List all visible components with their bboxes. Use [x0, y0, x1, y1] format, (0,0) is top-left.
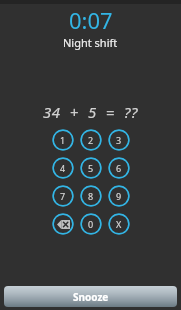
staticText: 8 — [88, 190, 94, 202]
staticText: Night shift — [63, 35, 118, 50]
staticText: X — [116, 218, 122, 230]
button[interactable]: 8 — [80, 185, 102, 207]
staticText: 5 — [88, 162, 94, 174]
button[interactable]: 4 — [52, 157, 74, 179]
staticText: 4 — [60, 162, 66, 174]
staticText: 9 — [116, 190, 122, 202]
staticText: 0:07 — [69, 5, 113, 35]
staticText: 6 — [116, 162, 122, 174]
button[interactable]: 3 — [108, 129, 130, 151]
staticText: Snooze — [73, 290, 109, 304]
button[interactable]: 6 — [108, 157, 130, 179]
staticText: 7 — [60, 190, 66, 202]
button[interactable]: 1 — [52, 129, 74, 151]
button[interactable]: 5 — [80, 157, 102, 179]
staticText: 34 + 5 = ?? — [43, 102, 139, 122]
button[interactable]: 7 — [52, 185, 74, 207]
button[interactable]: Snooze — [4, 286, 177, 307]
staticText: 3 — [116, 134, 122, 146]
button[interactable]: 0 — [80, 213, 102, 235]
staticText: 0 — [88, 218, 94, 230]
button[interactable]: X — [108, 213, 130, 235]
button[interactable]: Backspace — [52, 213, 74, 235]
staticText: 2 — [88, 134, 94, 146]
staticText: 1 — [60, 134, 66, 146]
button[interactable]: 9 — [108, 185, 130, 207]
button[interactable]: 2 — [80, 129, 102, 151]
